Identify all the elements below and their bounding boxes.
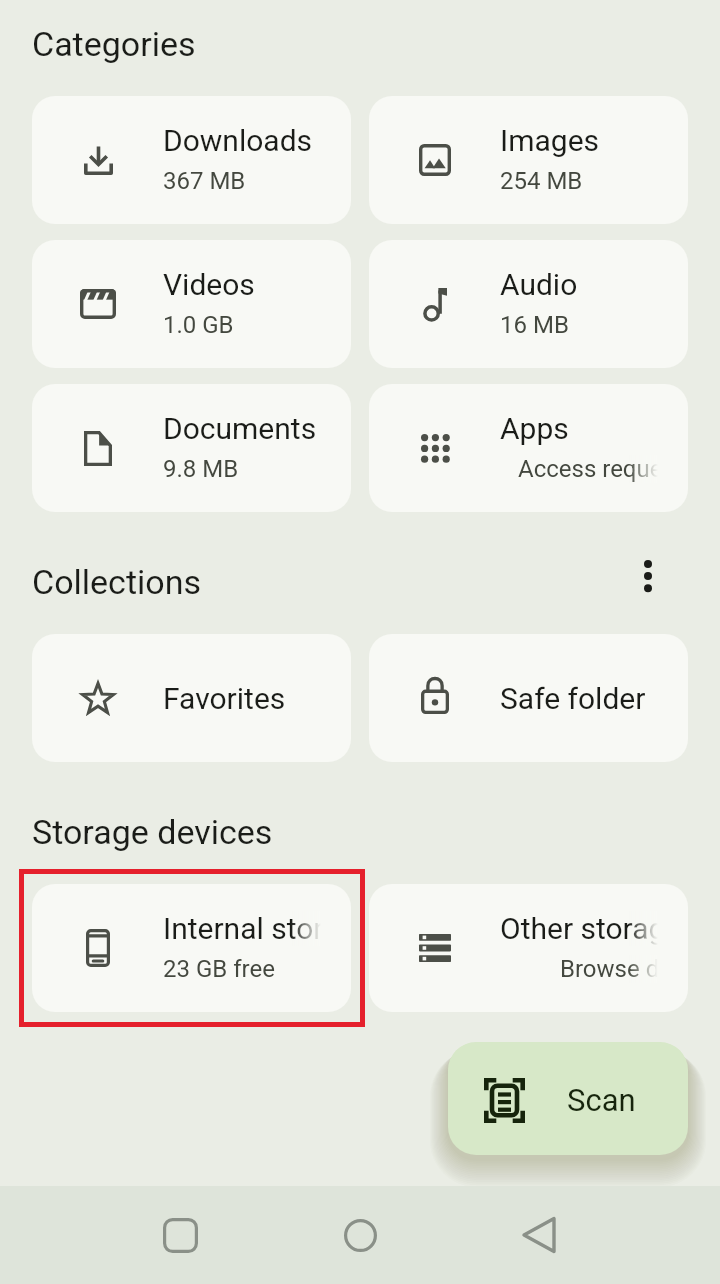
staticText: Other storage — [500, 911, 682, 946]
staticText: Safe folder — [500, 681, 646, 716]
staticText: 1.0 GB — [163, 311, 234, 339]
staticText: Collections — [32, 562, 201, 602]
staticText: Categories — [32, 24, 196, 64]
staticText: Apps — [500, 411, 569, 446]
staticText: Audio — [500, 267, 578, 302]
staticText: 16 MB — [500, 311, 569, 339]
staticText: Browse d — [560, 955, 660, 983]
staticText: Internal storage — [163, 911, 351, 946]
button[interactable]: Safe folder — [369, 634, 688, 762]
button[interactable]: Videos — [32, 240, 351, 368]
staticText: 254 MB — [500, 167, 583, 195]
staticText: Documents — [163, 411, 317, 446]
button[interactable]: Images — [369, 96, 688, 224]
button[interactable]: Favorites — [32, 634, 351, 762]
staticText: 367 MB — [163, 167, 246, 195]
staticText: 9.8 MB — [163, 455, 239, 483]
button[interactable]: More options — [624, 552, 672, 600]
button[interactable]: Back — [499, 1186, 579, 1284]
staticText: Storage devices — [32, 812, 273, 852]
button[interactable]: Scan — [448, 1042, 688, 1155]
button[interactable]: Downloads — [32, 96, 351, 224]
staticText: Favorites — [163, 681, 286, 716]
staticText: Access requested — [518, 455, 688, 483]
button[interactable]: Documents — [32, 384, 351, 512]
button[interactable]: Internal storage — [32, 884, 351, 1012]
staticText: Scan — [567, 1082, 636, 1118]
staticText: 23 GB free — [163, 955, 275, 983]
button[interactable]: Apps — [369, 384, 688, 512]
staticText: Downloads — [163, 123, 313, 158]
button[interactable]: Home — [320, 1186, 400, 1284]
button[interactable]: Recent apps — [140, 1186, 220, 1284]
button[interactable]: Other storage — [369, 884, 688, 1012]
staticText: Images — [500, 123, 600, 158]
staticText: Videos — [163, 267, 255, 302]
button[interactable]: Audio — [369, 240, 688, 368]
